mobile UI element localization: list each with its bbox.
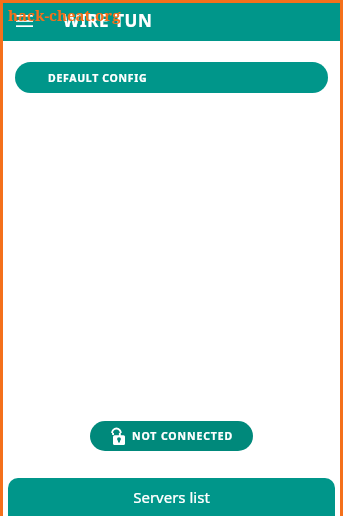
button[interactable]: DEFAULT CONFIG	[15, 62, 328, 93]
button[interactable]: Open navigation menu	[13, 10, 35, 32]
staticText: Servers list	[133, 487, 210, 507]
button[interactable]: Servers list	[8, 478, 335, 516]
staticText: hack-cheat.org	[8, 5, 121, 25]
staticText: WIRE TUN	[63, 9, 153, 32]
staticText: NOT CONNECTED	[132, 429, 234, 443]
button[interactable]: NOT CONNECTED	[90, 421, 253, 451]
staticText: DEFAULT CONFIG	[48, 71, 148, 85]
